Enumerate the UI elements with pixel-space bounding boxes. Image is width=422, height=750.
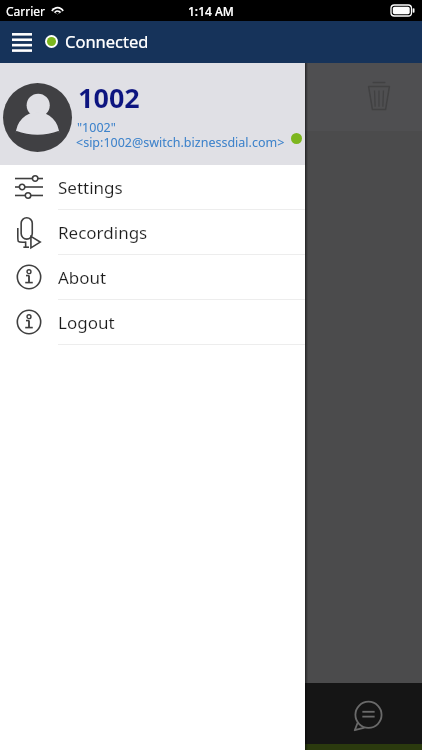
staticText: 1002 <box>78 79 140 116</box>
button[interactable]: Logout <box>0 300 305 345</box>
staticText: "1002" <box>77 119 116 136</box>
button[interactable]: Delete <box>363 79 395 111</box>
staticText: Connected <box>65 30 149 52</box>
button[interactable]: Open navigation drawer <box>0 21 40 63</box>
staticText: Carrier <box>6 3 46 19</box>
staticText: <sip:1002@switch.biznessdial.com> <box>76 134 285 151</box>
staticText: About <box>58 266 107 289</box>
button[interactable]: Recordings <box>0 210 305 255</box>
staticText: Recordings <box>58 221 148 244</box>
button[interactable]: About <box>0 255 305 300</box>
staticText: Settings <box>58 176 123 199</box>
button[interactable]: Settings <box>0 165 305 210</box>
staticText: Logout <box>58 311 115 334</box>
button[interactable]: Messages <box>352 700 386 734</box>
staticText: 1:14 AM <box>188 3 234 19</box>
